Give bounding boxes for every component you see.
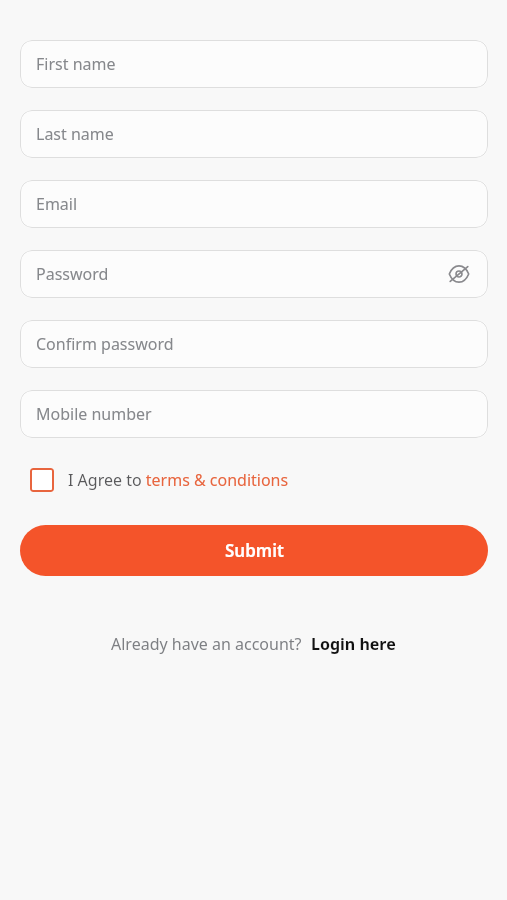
staticText: Email bbox=[36, 193, 78, 215]
staticText: First name bbox=[36, 53, 116, 75]
button[interactable]: Password bbox=[20, 250, 488, 298]
staticText: Already have an account? bbox=[111, 633, 302, 655]
button[interactable]: Mobile number bbox=[20, 390, 488, 438]
button[interactable]: Already have an account? bbox=[111, 633, 396, 655]
button[interactable]: First name bbox=[20, 40, 488, 88]
staticText: I Agree to terms & conditions bbox=[68, 469, 289, 491]
staticText: Submit bbox=[225, 539, 284, 562]
button[interactable]: Email bbox=[20, 180, 488, 228]
button[interactable]: Last name bbox=[20, 110, 488, 158]
staticText: Confirm password bbox=[36, 333, 174, 355]
button[interactable]: Submit bbox=[20, 525, 488, 576]
staticText: Password bbox=[36, 263, 109, 285]
button[interactable]: Confirm password bbox=[20, 320, 488, 368]
staticText: Last name bbox=[36, 123, 114, 145]
button[interactable]: I Agree to terms & conditions bbox=[30, 462, 289, 498]
button[interactable]: Show password bbox=[444, 259, 474, 289]
staticText: Mobile number bbox=[36, 403, 152, 425]
staticText: Login here bbox=[311, 633, 396, 655]
